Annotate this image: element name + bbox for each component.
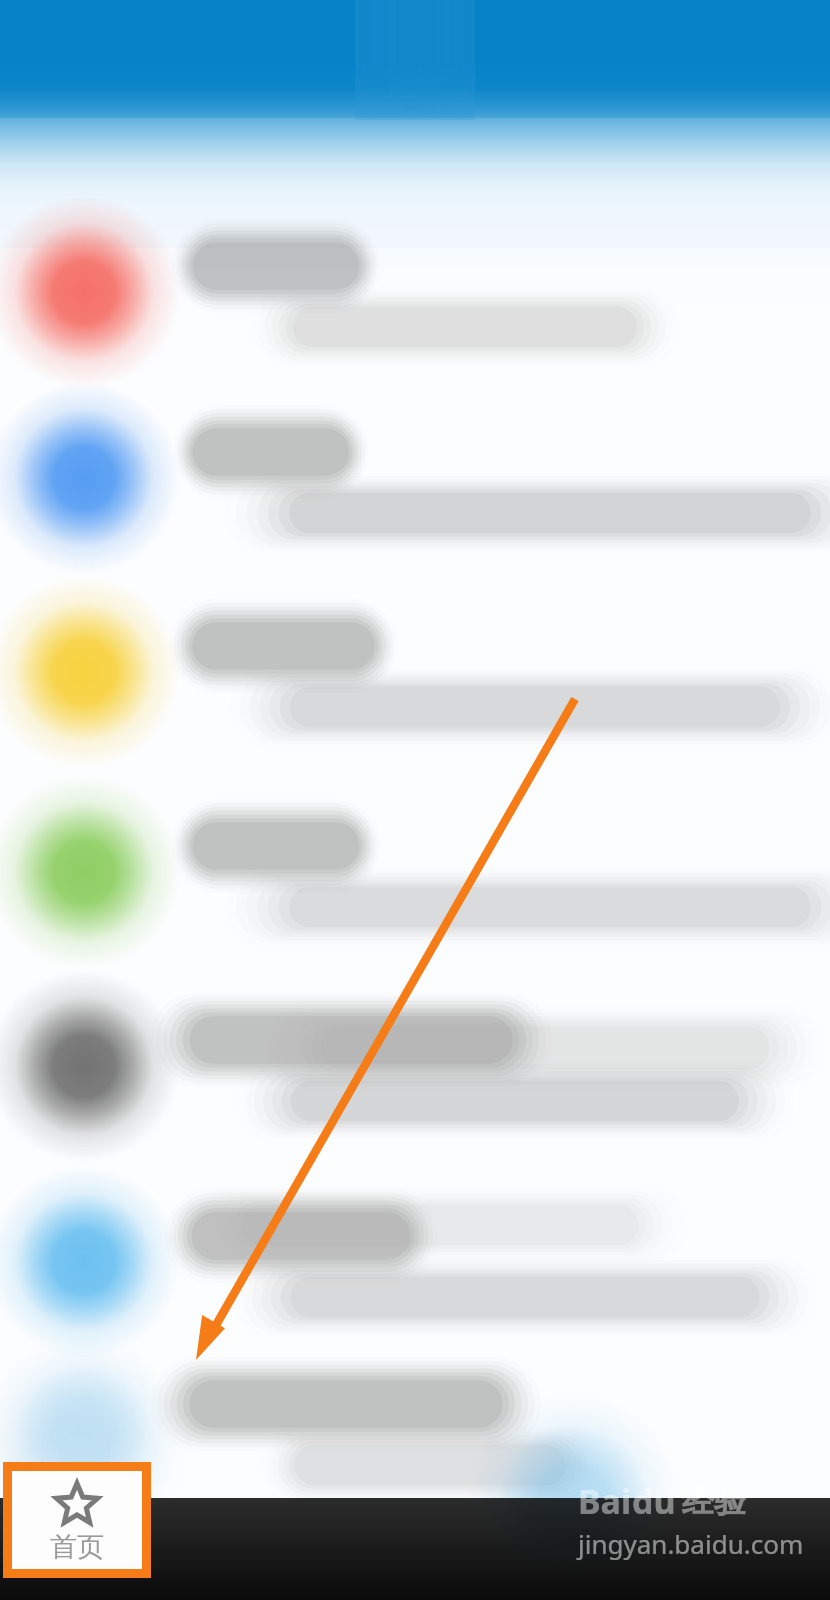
button[interactable]: 首页 <box>3 1462 151 1578</box>
staticText: Bai <box>578 1478 632 1524</box>
staticText: du <box>632 1478 676 1524</box>
staticText: jingyan.baidu.com <box>578 1526 804 1561</box>
staticText: 经验 <box>682 1481 746 1521</box>
staticText: 首页 <box>50 1530 104 1564</box>
